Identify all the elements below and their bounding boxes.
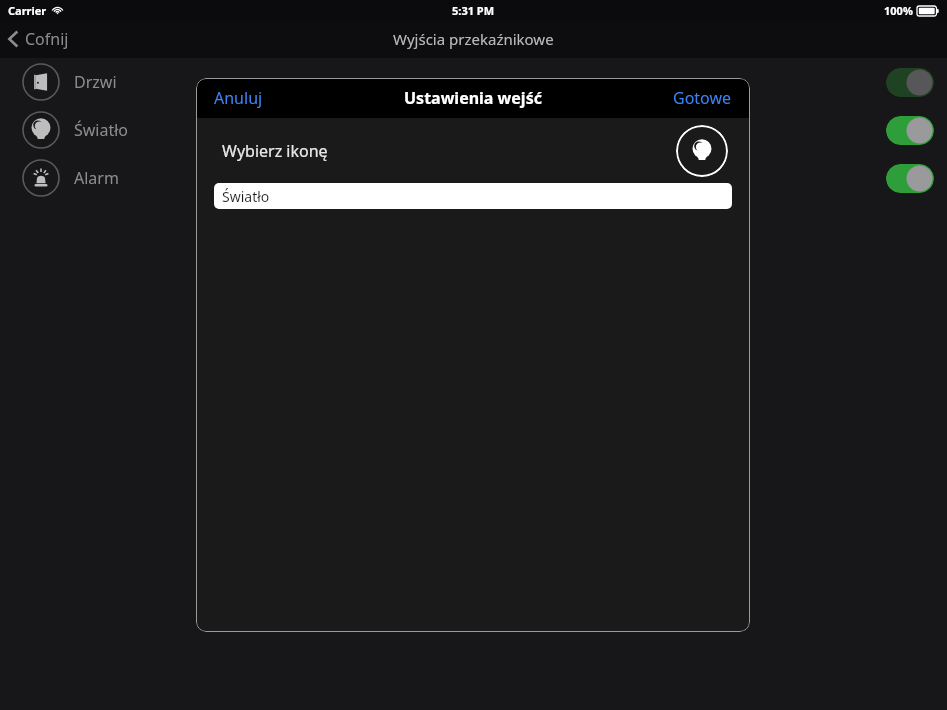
button[interactable]: Drzwi xyxy=(0,58,947,106)
staticText: Światło xyxy=(222,187,270,206)
staticText: Cofnij xyxy=(25,28,69,50)
staticText: 100% xyxy=(884,3,913,18)
button[interactable]: Gotowe xyxy=(665,81,740,115)
button[interactable]: Cofnij xyxy=(0,22,81,56)
button[interactable]: Przełącznik Światło xyxy=(886,116,934,145)
staticText: Gotowe xyxy=(673,87,732,109)
staticText: Wyjścia przekaźnikowe xyxy=(393,29,554,49)
staticText: Wybierz ikonę xyxy=(222,140,328,162)
button[interactable]: Anuluj xyxy=(206,81,271,115)
button[interactable]: Przełącznik Alarm xyxy=(886,164,934,193)
staticText: 5:31 PM xyxy=(452,3,495,18)
button[interactable]: Przełącznik Drzwi xyxy=(886,68,934,97)
button[interactable]: Wybierz ikonę xyxy=(676,125,728,177)
button[interactable]: Światło xyxy=(0,106,947,154)
staticText: Ustawienia wejść xyxy=(404,87,542,109)
staticText: Alarm xyxy=(74,167,119,189)
staticText: Drzwi xyxy=(74,71,117,93)
staticText: Carrier xyxy=(8,3,47,18)
staticText: Anuluj xyxy=(214,87,263,109)
button[interactable]: Światło xyxy=(214,183,732,209)
button[interactable]: Alarm xyxy=(0,154,947,202)
staticText: Światło xyxy=(74,119,129,141)
